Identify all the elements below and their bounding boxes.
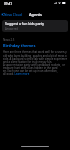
staticText: 09:41 bbox=[4, 2, 13, 6]
staticText: Nova 2.5 bbox=[3, 38, 15, 42]
button[interactable]: Suggest a fun kids party bbox=[2, 20, 68, 32]
staticText: Birthday themes bbox=[3, 43, 36, 48]
staticText: Agents bbox=[29, 12, 42, 17]
button[interactable]: Nova Cloud bbox=[0, 12, 24, 16]
staticText: Suggest a fun kids party bbox=[5, 21, 45, 26]
staticText: Here are three themes that work well for… bbox=[3, 50, 67, 75]
staticText: Nova Cloud bbox=[4, 12, 22, 16]
staticText: Answered bbox=[5, 27, 19, 31]
